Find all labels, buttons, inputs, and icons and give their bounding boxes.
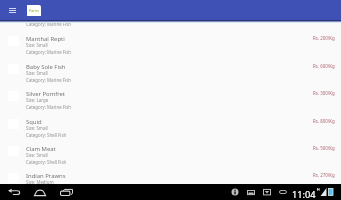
staticText: Rs. 600\Kg xyxy=(313,63,335,69)
button[interactable]: Manthal Repti xyxy=(0,32,341,59)
staticText: Size: Medium xyxy=(26,179,54,185)
button[interactable]: Indian Prawns xyxy=(0,169,341,196)
staticText: Rs. 270\Kg xyxy=(313,172,335,178)
button[interactable]: Clam Meat xyxy=(0,142,341,169)
staticText: Category: Shell Fish xyxy=(26,132,67,138)
staticText: Category: Marine Fish xyxy=(26,104,71,110)
staticText: Indian Prawns xyxy=(26,172,66,180)
staticText: Squid xyxy=(26,118,42,126)
staticText: Rs. 200\Kg xyxy=(313,35,335,41)
button[interactable]: Home xyxy=(30,184,49,200)
staticText: Clam Meat xyxy=(26,145,56,153)
button[interactable]: Squid xyxy=(0,115,341,142)
staticText: Size: Small xyxy=(26,70,48,76)
staticText: Category: Marine Fish xyxy=(26,49,71,55)
staticText: Category: Marine Fish xyxy=(26,77,71,83)
button[interactable]: USB connected xyxy=(278,184,287,200)
staticText: Size: Small xyxy=(26,125,48,131)
staticText: Category: Shell Fish xyxy=(26,186,67,192)
staticText: Rs. 800\Kg xyxy=(313,118,335,124)
button[interactable]: Screenshot captured xyxy=(246,184,255,200)
staticText: Size: Small xyxy=(26,42,48,48)
staticText: 11:04 xyxy=(292,188,316,200)
button[interactable]: Recent apps xyxy=(57,184,76,200)
button[interactable]: Back xyxy=(4,184,23,200)
button[interactable]: Farm xyxy=(27,5,41,16)
button[interactable]: System info xyxy=(230,184,239,200)
button[interactable]: Silver Pomfret xyxy=(0,87,341,114)
staticText: Manthal Repti xyxy=(26,35,65,43)
button[interactable]: Download complete xyxy=(262,184,271,200)
staticText: Silver Pomfret xyxy=(26,90,65,98)
staticText: Rs. 500\Kg xyxy=(313,145,335,151)
button[interactable]: Baby Sole Fish xyxy=(0,60,341,87)
staticText: Size: Small xyxy=(26,152,48,158)
staticText: Farm xyxy=(29,8,39,13)
staticText: Size: Large xyxy=(26,97,49,103)
staticText: Baby Sole Fish xyxy=(26,63,66,71)
button[interactable]: Open navigation menu xyxy=(5,0,20,20)
staticText: Category: Marine Fish xyxy=(26,21,71,27)
staticText: Category: Shell Fish xyxy=(26,159,67,165)
staticText: Rs. 300\Kg xyxy=(313,90,335,96)
